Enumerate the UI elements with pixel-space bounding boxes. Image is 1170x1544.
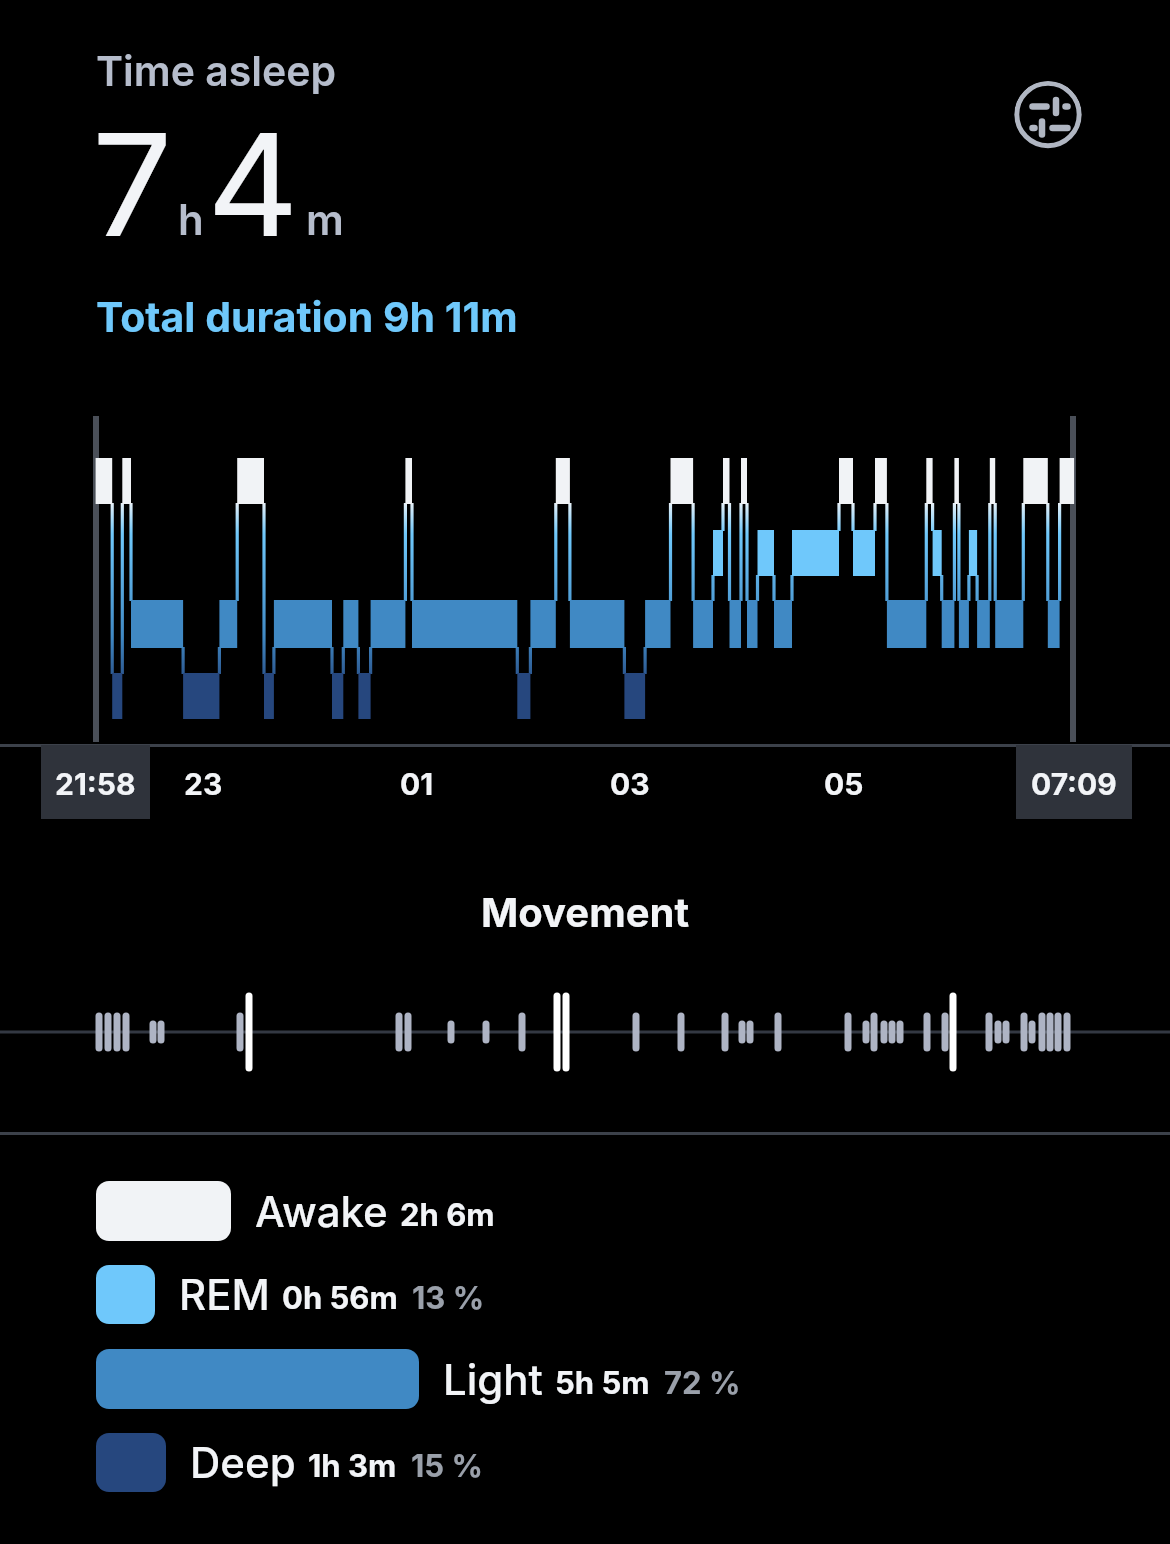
staticText: Light (443, 1354, 543, 1405)
button[interactable]: REM (96, 1253, 485, 1336)
button[interactable]: Time asleep (96, 46, 337, 96)
button[interactable]: Light (96, 1337, 741, 1421)
staticText: 13 % (412, 1279, 485, 1317)
staticText: Movement (481, 888, 690, 936)
button[interactable]: 07:09 (1016, 745, 1132, 819)
staticText: 4 (207, 98, 299, 270)
staticText: 23 (184, 766, 223, 802)
staticText: 2h 6m (400, 1196, 495, 1234)
staticText: 1h 3m (308, 1447, 397, 1485)
staticText: REM (179, 1269, 270, 1320)
staticText: 05 (824, 766, 864, 802)
staticText: 03 (610, 766, 650, 802)
button[interactable]: Awake (96, 1169, 495, 1253)
button[interactable]: 21:58 (41, 745, 150, 819)
staticText: h (178, 194, 204, 245)
staticText: 72 % (664, 1364, 741, 1402)
staticText: 5h 5m (555, 1364, 650, 1402)
staticText: 21:58 (55, 766, 136, 802)
staticText: Time asleep (96, 46, 337, 96)
staticText: Total duration 9h 11m (96, 292, 518, 342)
staticText: 07:09 (1031, 766, 1117, 802)
staticText: 0h 56m (282, 1279, 398, 1317)
staticText: Awake (255, 1186, 388, 1237)
button[interactable]: Deep (96, 1421, 484, 1504)
staticText: 15 % (411, 1447, 484, 1485)
staticText: 01 (400, 766, 434, 802)
staticText: 7 (92, 98, 173, 270)
staticText: m (306, 194, 344, 245)
staticText: Deep (190, 1437, 296, 1488)
button[interactable]: Adjust sleep settings (1014, 81, 1082, 149)
button[interactable]: Total duration 9h 11m (96, 292, 518, 342)
